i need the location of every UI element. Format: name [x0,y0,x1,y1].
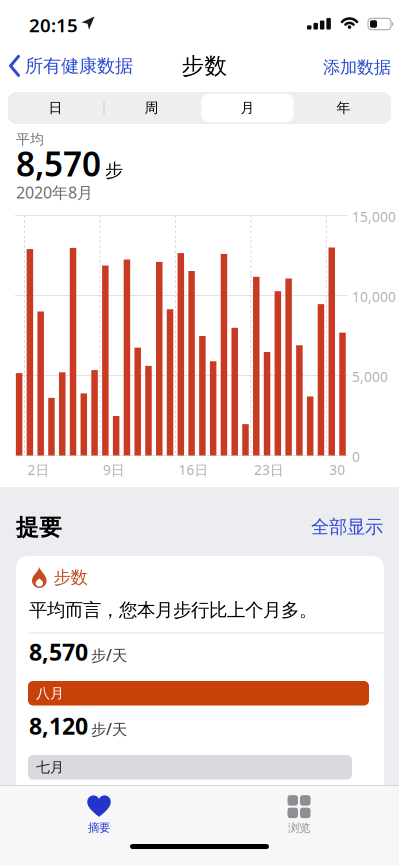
staticText: 16日 [178,461,208,479]
staticText: 日 [48,100,62,116]
staticText: 2日 [27,461,49,479]
staticText: 七月 [36,759,64,776]
staticText: 步 [105,160,123,181]
staticText: 全部显示 [311,516,383,538]
staticText: 5,000 [352,368,388,386]
button[interactable]: 摘要 [49,791,149,839]
staticText: 步/天 [91,719,127,739]
button[interactable]: 所有健康数据 [9,55,133,77]
staticText: 23日 [254,461,284,479]
staticText: 0 [352,448,360,466]
staticText: 提要 [16,514,62,541]
staticText: 平均而言，您本月步行比上个月多。 [29,599,317,621]
staticText: 月 [240,100,254,116]
staticText: 周 [144,100,158,116]
staticText: 步/天 [91,645,127,665]
staticText: 浏览 [288,821,310,835]
staticText: 步数 [181,52,227,79]
staticText: 摘要 [88,821,110,835]
button[interactable]: 浏览 [249,791,349,839]
staticText: 30 [329,461,345,479]
button[interactable]: 周 [104,92,199,124]
button[interactable]: 月 [200,92,295,124]
button[interactable]: 全部显示 [311,516,383,538]
staticText: 8,570 [29,637,88,667]
staticText: 步数 [54,567,88,588]
button[interactable]: 添加数据 [323,57,391,78]
staticText: 所有健康数据 [25,55,133,77]
button[interactable]: 步数 [16,556,384,865]
staticText: 添加数据 [323,57,391,78]
staticText: 平均 [16,131,44,148]
staticText: 20:15 [29,13,78,37]
button[interactable]: 年 [296,92,391,124]
staticText: 8,570 [16,142,101,185]
staticText: 八月 [36,685,64,702]
staticText: 9日 [103,461,125,479]
staticText: 年 [336,100,350,116]
staticText: 15,000 [352,208,396,226]
button[interactable]: 日 [8,92,103,124]
staticText: 2020年8月 [16,182,93,203]
staticText: 8,120 [29,711,88,741]
staticText: 10,000 [352,288,396,306]
